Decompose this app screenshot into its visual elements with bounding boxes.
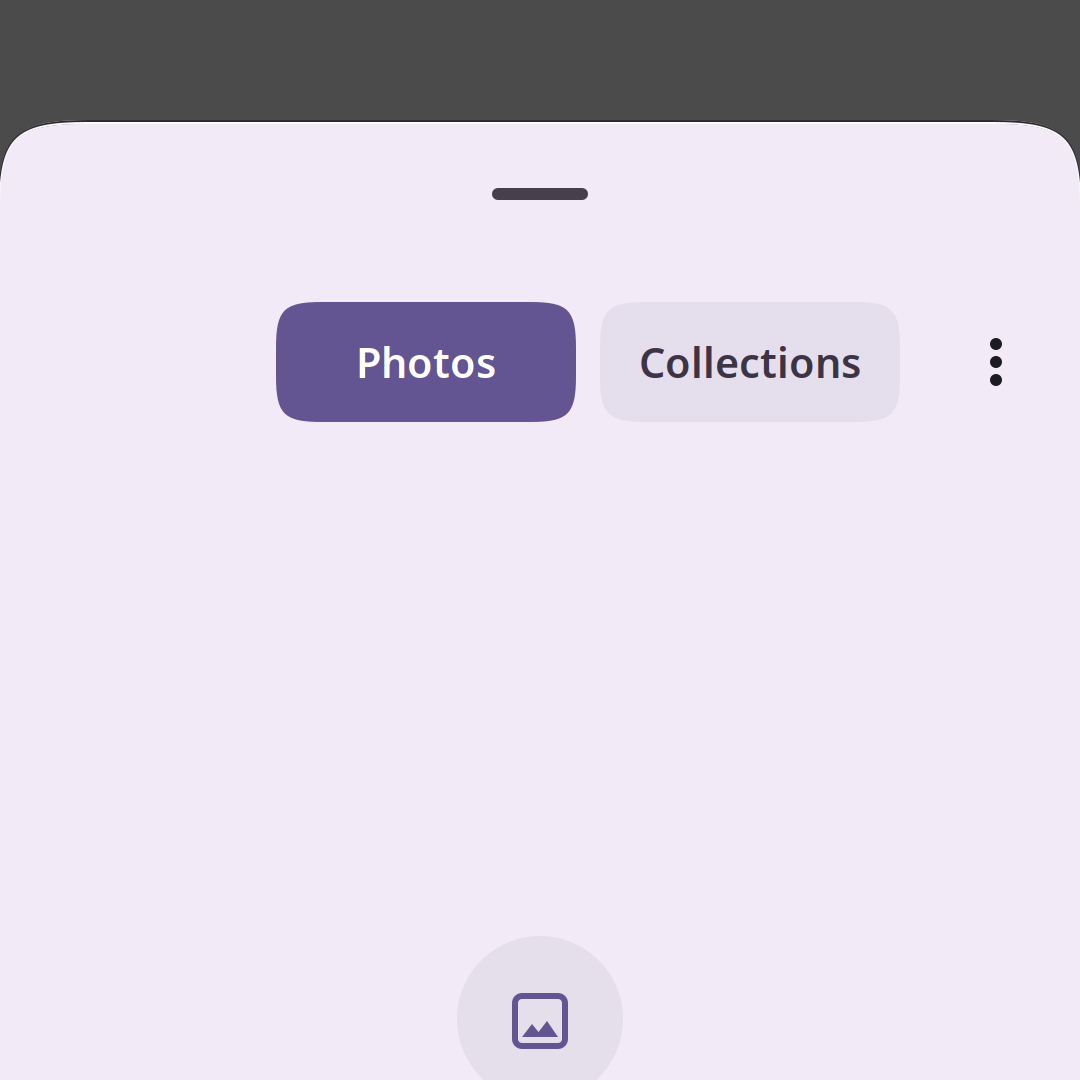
button[interactable]: Collections [600,302,900,422]
button[interactable]: More options [954,302,1038,422]
staticText: Photos [356,335,496,389]
staticText: Collections [639,335,861,389]
button[interactable]: Photos [276,302,576,422]
